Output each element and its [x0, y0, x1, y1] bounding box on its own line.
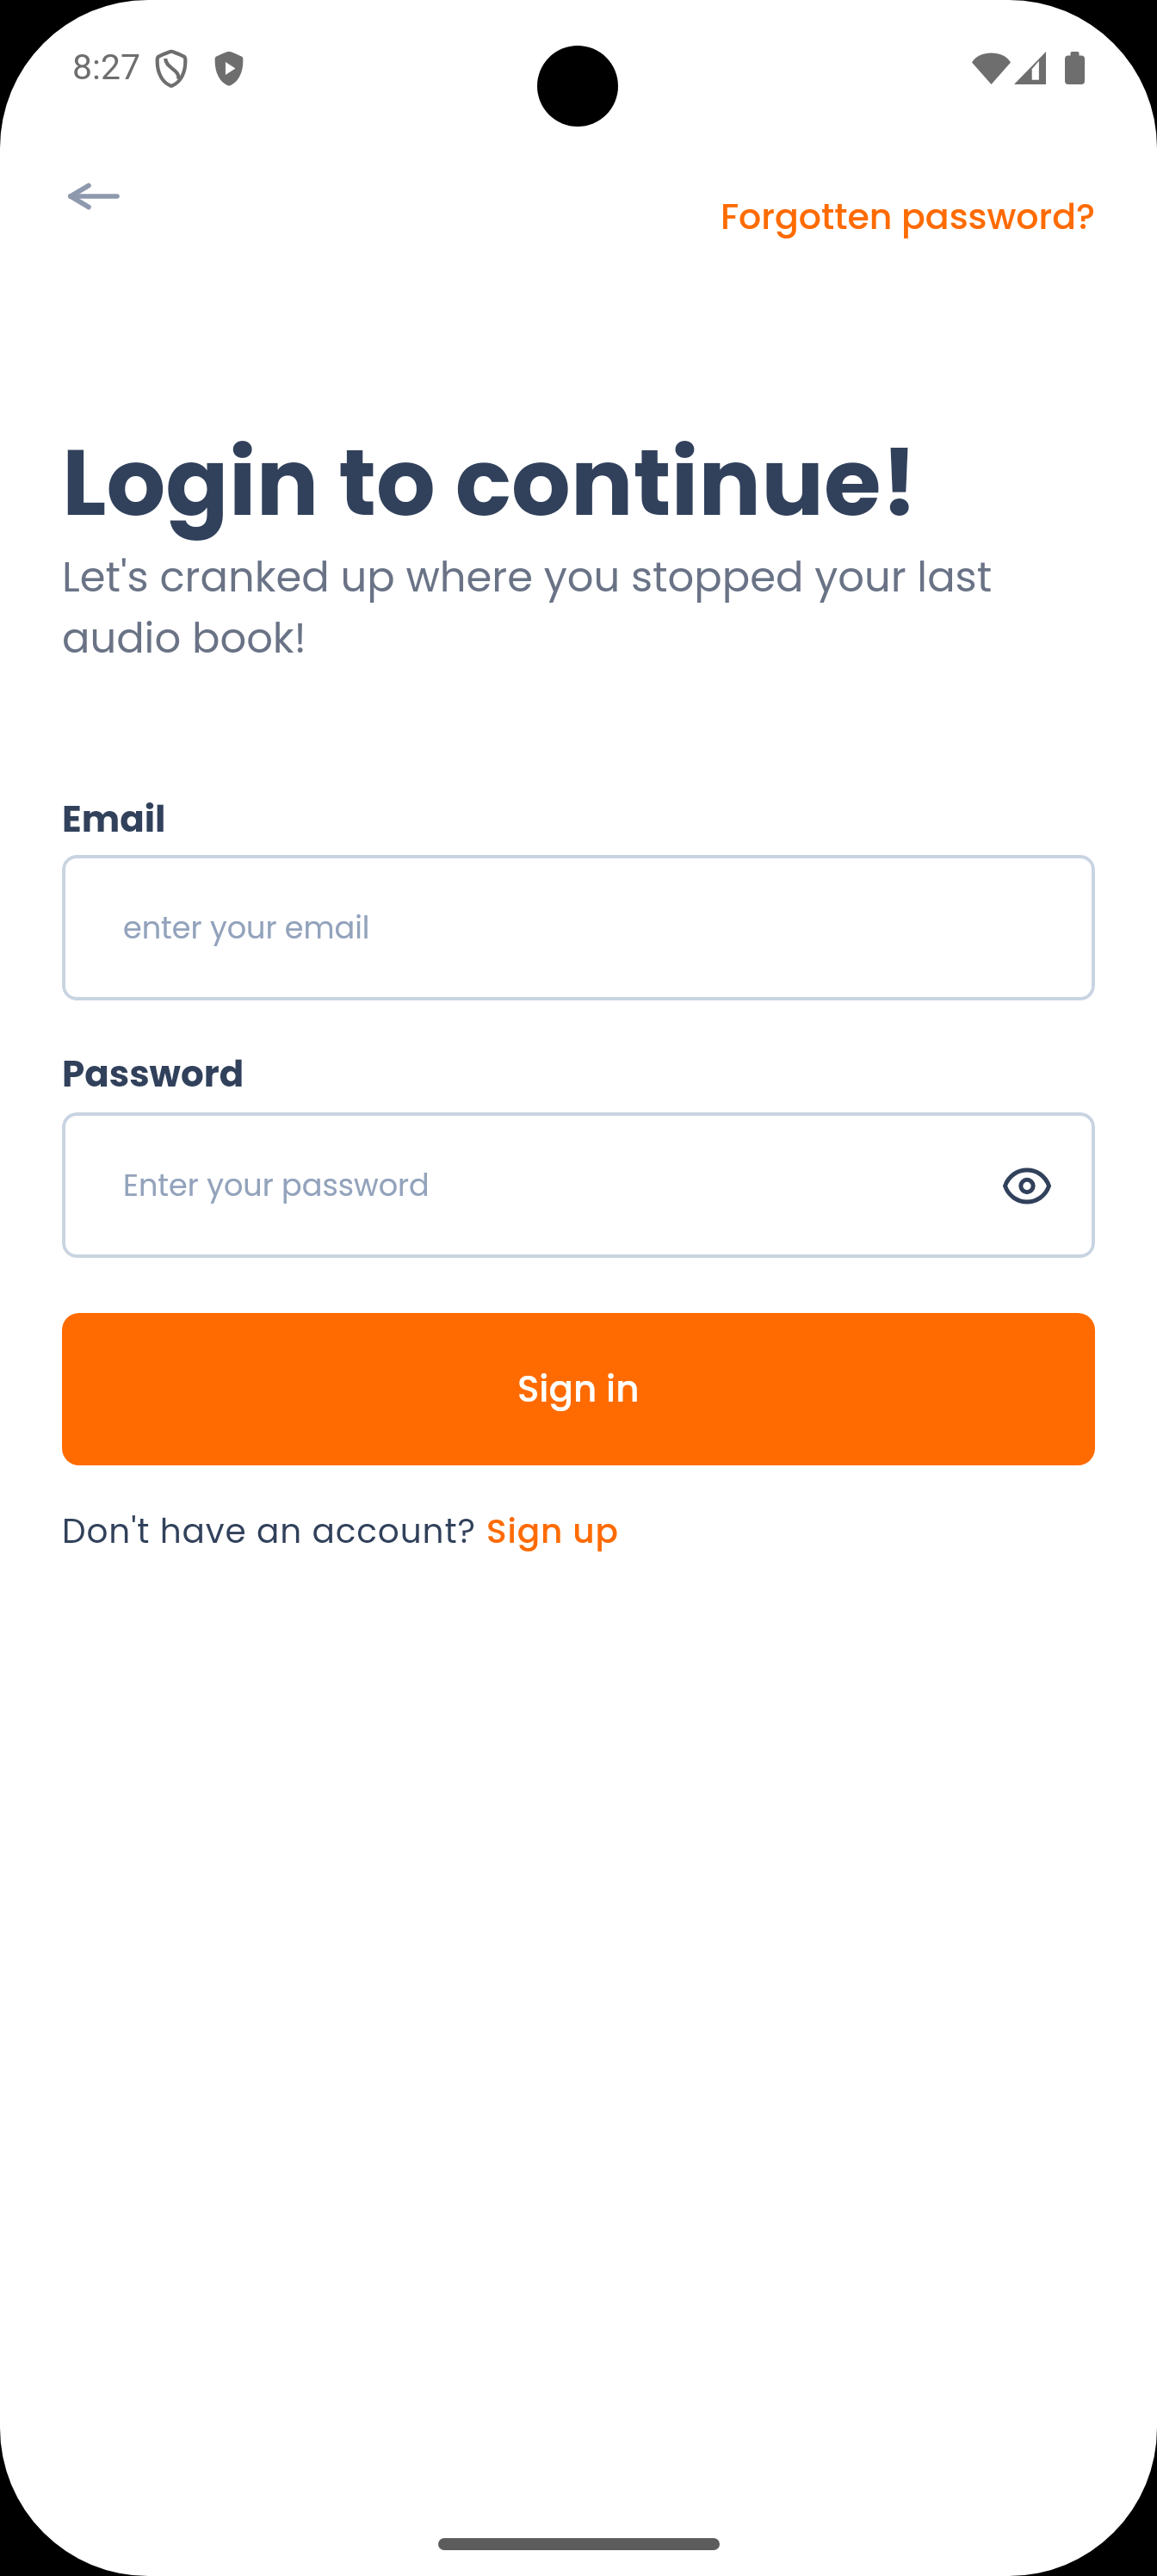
- button[interactable]: Sign in: [62, 1313, 1095, 1465]
- staticText: Password: [62, 1049, 244, 1099]
- staticText: Let's cranked up where you stopped your …: [62, 548, 1095, 667]
- button[interactable]: enter your email: [62, 855, 1095, 1000]
- staticText: Sign in: [517, 1364, 640, 1415]
- staticText: Enter your password: [123, 1164, 430, 1206]
- button[interactable]: Enter your password: [62, 1112, 1095, 1258]
- button[interactable]: Forgotten password?: [703, 176, 1113, 257]
- staticText: Login to continue!: [62, 418, 918, 548]
- button[interactable]: Back: [53, 155, 135, 238]
- staticText: Forgotten password?: [721, 192, 1096, 241]
- button[interactable]: Show password: [990, 1149, 1064, 1223]
- staticText: Sign up: [486, 1508, 619, 1555]
- staticText: Email: [62, 794, 166, 845]
- staticText: enter your email: [123, 907, 370, 949]
- staticText: Don't have an account?: [62, 1508, 486, 1555]
- staticText: 8:27: [72, 46, 141, 88]
- button[interactable]: Sign up: [486, 1508, 619, 1555]
